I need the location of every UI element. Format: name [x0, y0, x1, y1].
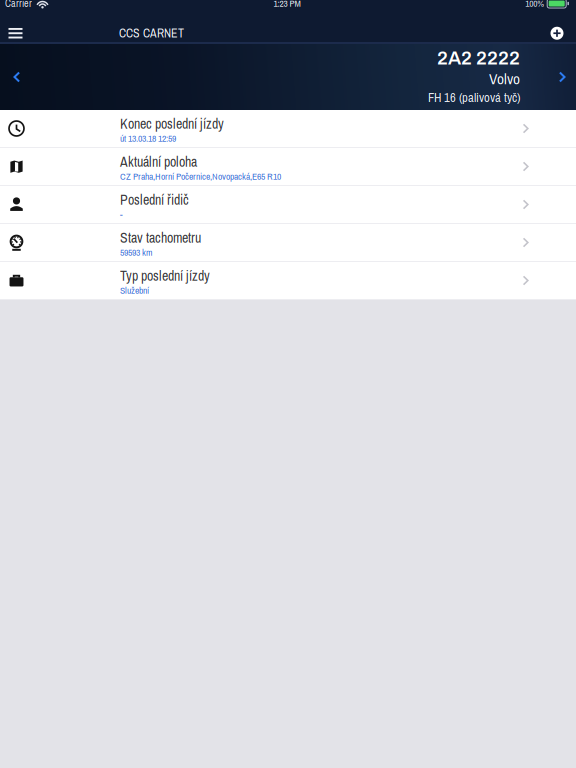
staticText: 1:23 PM	[274, 0, 301, 10]
staticText: FH 16 (palivová tyč)	[428, 89, 520, 106]
staticText: 2A2 2222	[437, 48, 520, 68]
button[interactable]: Poslední řidič	[0, 186, 576, 224]
button[interactable]: Previous vehicle	[0, 55, 34, 99]
button[interactable]: Add vehicle	[542, 18, 572, 48]
staticText: Poslední řidič	[120, 190, 189, 209]
staticText: Stav tachometru	[120, 228, 201, 247]
staticText: Carrier	[5, 0, 32, 10]
button[interactable]: Next vehicle	[548, 55, 576, 99]
button[interactable]: Menu	[0, 18, 31, 48]
staticText: út 13.03.18 12:59	[120, 132, 176, 145]
staticText: 100%	[525, 0, 544, 10]
button[interactable]: Konec poslední jízdy	[0, 110, 576, 148]
staticText: CCS CARNET	[119, 25, 184, 41]
button[interactable]: Stav tachometru	[0, 224, 576, 262]
staticText: Aktuální poloha	[120, 152, 197, 171]
staticText: CZ Praha,Horní Počernice,Novopacká,E65 R…	[120, 170, 281, 183]
staticText: Konec poslední jízdy	[120, 114, 224, 133]
staticText: Typ poslední jízdy	[120, 266, 210, 285]
staticText: Služební	[120, 284, 149, 297]
button[interactable]: Typ poslední jízdy	[0, 262, 576, 300]
staticText: Volvo	[489, 68, 520, 89]
button[interactable]: Aktuální poloha	[0, 148, 576, 186]
staticText: -	[120, 208, 123, 221]
staticText: 59593 km	[120, 246, 152, 259]
